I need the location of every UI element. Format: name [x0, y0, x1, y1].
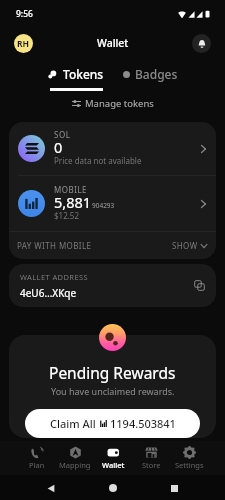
button[interactable]: Wallet [94, 441, 132, 475]
staticText: Pending Rewards [49, 362, 176, 383]
staticText: Manage tokens [85, 97, 154, 110]
staticText: 0 [54, 137, 63, 157]
button[interactable]: Store [132, 441, 170, 475]
staticText: You have unclaimed rewards. [51, 385, 175, 397]
button[interactable]: WALLET ADDRESS [9, 264, 216, 307]
button[interactable]: Back [40, 477, 62, 499]
button[interactable]: Profile [14, 34, 33, 53]
staticText: Wallet [102, 460, 125, 470]
staticText: WALLET ADDRESS [20, 272, 89, 282]
staticText: Plan [29, 460, 45, 470]
staticText: Price data not available [54, 155, 142, 166]
staticText: 1194.503841 [110, 416, 176, 431]
staticText: Tokens [63, 66, 104, 82]
staticText: 9:56 [16, 8, 33, 20]
button[interactable]: Settings [170, 441, 208, 475]
staticText: 5,881 [54, 192, 92, 212]
staticText: RH [17, 38, 30, 50]
button[interactable]: SOL [9, 122, 216, 175]
staticText: SOL [54, 129, 71, 140]
staticText: 4eU6…XKqe [20, 286, 77, 300]
staticText: Badges [135, 66, 178, 82]
staticText: Settings [175, 460, 204, 470]
staticText: SHOW [172, 240, 198, 251]
staticText: $12.52 [54, 210, 80, 221]
button[interactable]: PAY WITH MOBILE [9, 232, 216, 259]
button[interactable]: Manage tokens [68, 96, 158, 111]
button[interactable]: Notifications [192, 34, 211, 53]
button[interactable]: Plan [17, 441, 56, 475]
button[interactable]: Home [102, 477, 124, 499]
button[interactable]: Recents [163, 477, 185, 499]
button[interactable]: Badges [120, 66, 181, 82]
button[interactable]: Claim All [25, 409, 200, 438]
other: Copy address [194, 280, 205, 291]
staticText: Claim All [50, 416, 96, 431]
staticText: Store [142, 460, 161, 470]
staticText: Wallet [97, 36, 129, 50]
staticText: 904293 [92, 201, 115, 210]
button[interactable]: MOBILE [9, 176, 216, 231]
button[interactable]: Tokens [45, 66, 107, 91]
staticText: MOBILE [54, 184, 88, 195]
staticText: PAY WITH MOBILE [17, 240, 92, 251]
staticText: Mapping [59, 460, 91, 470]
button[interactable]: Mapping [56, 441, 94, 475]
